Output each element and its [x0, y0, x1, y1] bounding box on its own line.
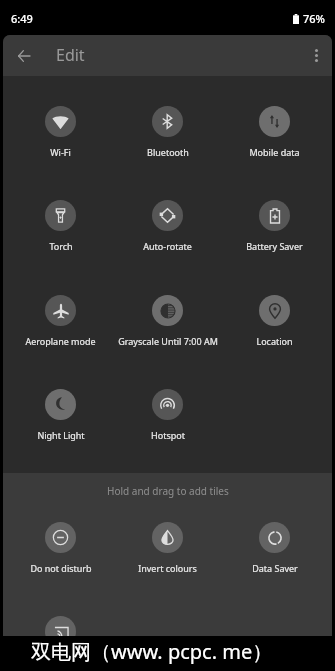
button[interactable]: Auto-rotate [114, 184, 221, 264]
button[interactable]: Location [221, 279, 328, 359]
button[interactable]: Grayscale Until 7:00 AM [114, 279, 221, 359]
button[interactable]: Invert colours [114, 506, 221, 586]
button[interactable]: Mobile data [221, 90, 328, 170]
button[interactable]: Bluetooth [114, 90, 221, 170]
staticText: Hotspot [151, 429, 185, 441]
staticText: Location [256, 335, 293, 347]
staticText: 6:49 [11, 11, 33, 26]
button[interactable]: Wi-Fi [7, 90, 114, 170]
button[interactable]: Hotspot [114, 373, 221, 453]
staticText: 双电网（www. pcpc. me） [31, 638, 273, 665]
button[interactable]: Screen Cast [7, 600, 114, 636]
staticText: 76% [303, 11, 325, 26]
button[interactable]: Night Light [7, 373, 114, 453]
staticText: Night Light [37, 429, 85, 441]
staticText: Aeroplane mode [25, 335, 96, 347]
staticText: Bluetooth [147, 146, 189, 158]
staticText: Invert colours [138, 562, 197, 574]
button[interactable]: Aeroplane mode [7, 279, 114, 359]
staticText: Battery Saver [246, 240, 303, 252]
staticText: Auto-rotate [143, 240, 192, 252]
staticText: Mobile data [249, 146, 300, 158]
staticText: Torch [49, 240, 73, 252]
button[interactable]: Torch [7, 184, 114, 264]
button[interactable]: Data Saver [221, 506, 328, 586]
staticText: Wi-Fi [50, 146, 71, 158]
staticText: Edit [56, 44, 85, 66]
staticText: Do not disturb [30, 562, 92, 574]
staticText: Grayscale Until 7:00 AM [118, 335, 218, 347]
button[interactable]: Back [6, 38, 41, 73]
staticText: Hold and drag to add tiles [107, 484, 229, 498]
button[interactable]: Do not disturb [7, 506, 114, 586]
button[interactable]: Battery Saver [221, 184, 328, 264]
staticText: Data Saver [252, 562, 298, 574]
button[interactable]: More options [299, 38, 332, 73]
